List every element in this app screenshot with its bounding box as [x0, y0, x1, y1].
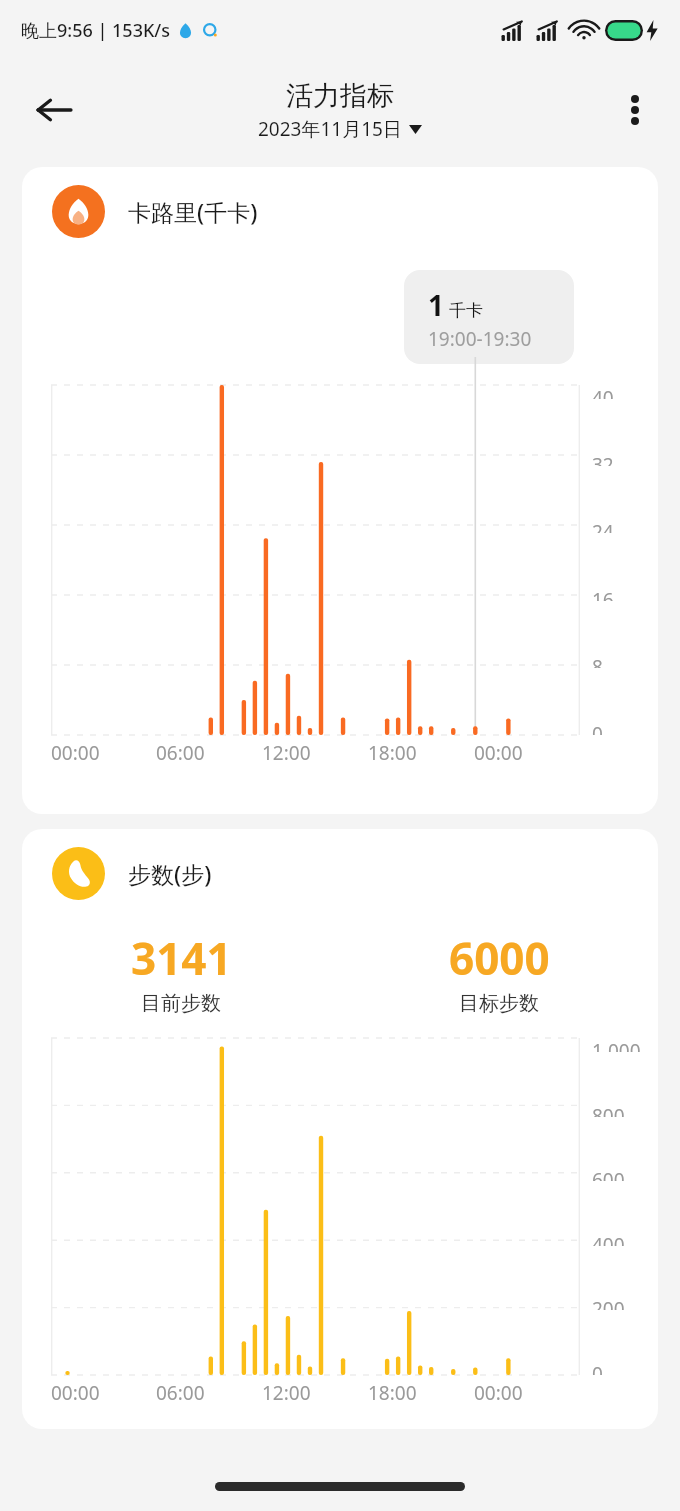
staticText: 600 — [592, 1167, 625, 1181]
staticText: 18:00 — [368, 1380, 417, 1406]
button[interactable]: 卡路里(千卡) — [22, 167, 658, 814]
staticText: 步数(步) — [128, 858, 212, 889]
staticText: 12:00 — [262, 740, 311, 766]
button[interactable]: More options — [610, 85, 660, 135]
staticText: 00:00 — [474, 740, 523, 766]
staticText: 0 — [592, 1361, 603, 1375]
staticText: 24 — [592, 519, 614, 533]
staticText: 3141 — [131, 928, 232, 988]
staticText: 活力指标 — [286, 79, 394, 113]
staticText: 6000 — [449, 928, 550, 988]
staticText: 200 — [592, 1296, 625, 1310]
staticText: 12:00 — [262, 1380, 311, 1406]
staticText: 卡路里(千卡) — [128, 196, 258, 227]
staticText: 40 — [592, 385, 614, 399]
staticText: 19:00-19:30 — [428, 326, 532, 352]
staticText: 16 — [592, 587, 614, 601]
staticText: 18:00 — [368, 740, 417, 766]
staticText: 400 — [592, 1232, 625, 1246]
staticText: 千卡 — [449, 300, 483, 321]
staticText: 1 — [428, 286, 445, 324]
staticText: 00:00 — [474, 1380, 523, 1406]
button[interactable]: 2023年11月15日 — [258, 116, 422, 142]
staticText: 8 — [592, 654, 603, 668]
staticText: 32 — [592, 452, 614, 466]
staticText: 06:00 — [156, 740, 205, 766]
staticText: 0 — [592, 721, 603, 735]
staticText: 2023年11月15日 — [258, 116, 402, 142]
staticText: 00:00 — [51, 740, 100, 766]
staticText: 00:00 — [51, 1380, 100, 1406]
button[interactable]: Back — [28, 84, 80, 136]
staticText: 目标步数 — [459, 991, 539, 1016]
staticText: 晚上9:56 | 153K/s — [21, 18, 171, 43]
button[interactable]: 步数(步) — [22, 829, 658, 1429]
staticText: 06:00 — [156, 1380, 205, 1406]
staticText: 1,000 — [592, 1038, 641, 1052]
staticText: 目前步数 — [141, 991, 221, 1016]
staticText: 800 — [592, 1103, 625, 1117]
